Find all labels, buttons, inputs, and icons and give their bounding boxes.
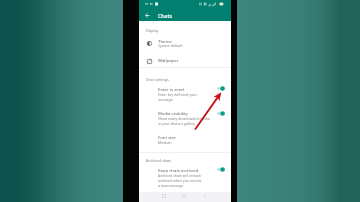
button[interactable] bbox=[139, 37, 231, 49]
staticText: Wallpaper bbox=[158, 57, 179, 63]
staticText: Show newly downloaded media bbox=[158, 116, 210, 121]
button[interactable]: Theme bbox=[145, 39, 153, 47]
staticText: Display bbox=[146, 28, 159, 33]
button[interactable]: Home bbox=[179, 191, 189, 201]
button[interactable]: Toggle setting bbox=[212, 164, 228, 174]
staticText: Keep chats archived bbox=[158, 167, 199, 173]
button[interactable] bbox=[139, 55, 231, 66]
staticText: a new message bbox=[158, 183, 184, 188]
staticText: Theme bbox=[158, 38, 172, 44]
staticText: archived when you receive bbox=[158, 178, 202, 183]
staticText: in your device's gallery bbox=[158, 121, 196, 126]
button[interactable] bbox=[139, 133, 231, 146]
staticText: Medium bbox=[158, 140, 172, 145]
button[interactable]: Recent apps bbox=[159, 191, 169, 201]
staticText: Chats bbox=[158, 12, 173, 19]
button[interactable] bbox=[139, 108, 231, 126]
button[interactable]: Toggle setting bbox=[212, 83, 228, 93]
staticText: message bbox=[158, 97, 173, 102]
staticText: System default bbox=[158, 43, 183, 48]
staticText: Archived chats will remain bbox=[158, 173, 201, 178]
button[interactable]: Back bbox=[200, 191, 210, 201]
staticText: Archived chats bbox=[146, 158, 172, 163]
button[interactable]: Back bbox=[141, 9, 154, 21]
staticText: Font size bbox=[158, 134, 176, 140]
button[interactable]: Wallpaper bbox=[145, 57, 153, 65]
button[interactable] bbox=[139, 84, 231, 102]
staticText: Enter is send bbox=[158, 86, 184, 92]
staticText: Media visibility bbox=[158, 110, 188, 116]
staticText: Chat settings bbox=[146, 77, 169, 82]
button[interactable] bbox=[139, 165, 231, 188]
staticText: Enter key will send your bbox=[158, 92, 197, 97]
button[interactable]: Toggle setting bbox=[212, 108, 228, 118]
